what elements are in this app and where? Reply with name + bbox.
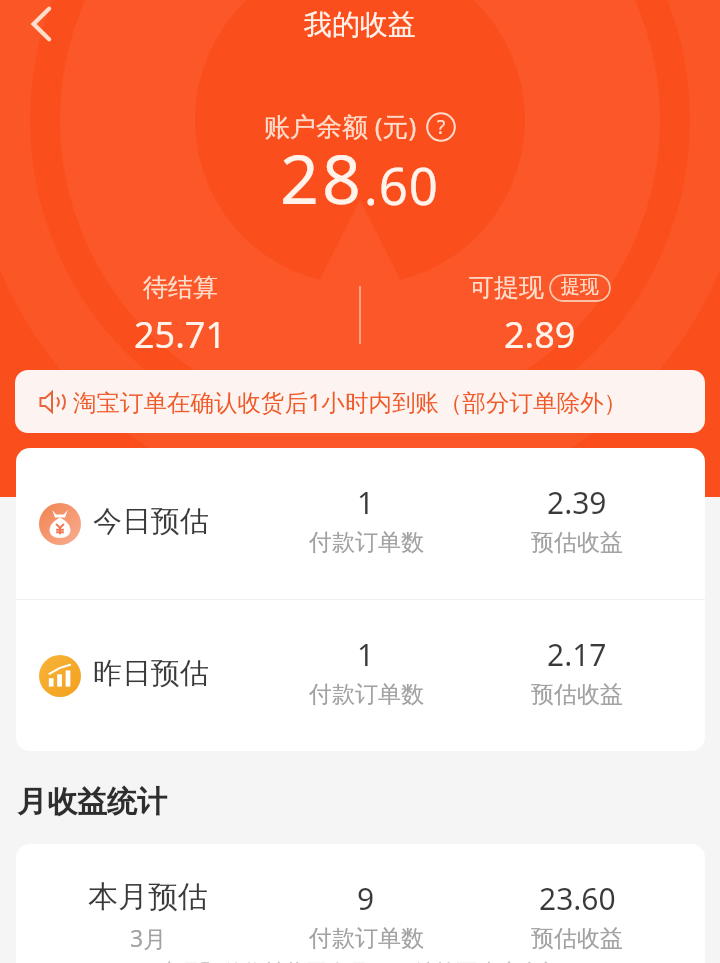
- staticText: 2.39: [547, 482, 607, 523]
- staticText: 本月预估: [88, 878, 208, 916]
- button[interactable]: Back: [16, 0, 64, 48]
- button[interactable]: 昨日预估: [16, 600, 705, 751]
- staticText: 今日预估: [93, 503, 209, 540]
- button[interactable]: 提现: [549, 274, 611, 302]
- staticText: 付款订单数: [309, 528, 424, 557]
- button[interactable]: 淘宝订单在确认收货后1小时内到账（部分订单除外）: [15, 370, 705, 433]
- staticText: 2.17: [547, 634, 607, 675]
- staticText: ?: [437, 114, 446, 140]
- staticText: 待结算: [143, 272, 218, 303]
- staticText: 账户余额 (元): [264, 108, 417, 144]
- staticText: 上月预估收益将于次月25日结算至账户余额: [159, 957, 562, 963]
- staticText: 昨日预估: [93, 655, 209, 692]
- staticText: 预估收益: [531, 680, 623, 709]
- button[interactable]: Help: [426, 112, 456, 142]
- staticText: 25.71: [134, 310, 227, 359]
- staticText: 付款订单数: [309, 924, 424, 953]
- button[interactable]: 本月预估: [16, 844, 705, 963]
- staticText: 淘宝订单在确认收货后1小时内到账（部分订单除外）: [73, 386, 627, 418]
- staticText: 1: [357, 482, 375, 523]
- staticText: 我的收益: [304, 7, 416, 42]
- staticText: 3月: [130, 922, 167, 953]
- staticText: 2.89: [504, 310, 576, 359]
- button[interactable]: 今日预估: [16, 448, 705, 599]
- staticText: 28: [280, 131, 364, 224]
- staticText: 提现: [561, 275, 599, 299]
- staticText: 23.60: [539, 878, 616, 919]
- staticText: 可提现: [469, 272, 544, 303]
- staticText: 付款订单数: [309, 680, 424, 709]
- staticText: 1: [357, 634, 375, 675]
- staticText: 预估收益: [531, 924, 623, 953]
- staticText: .60: [364, 150, 440, 219]
- staticText: 月收益统计: [17, 783, 167, 821]
- staticText: 9: [357, 878, 375, 919]
- staticText: 预估收益: [531, 528, 623, 557]
